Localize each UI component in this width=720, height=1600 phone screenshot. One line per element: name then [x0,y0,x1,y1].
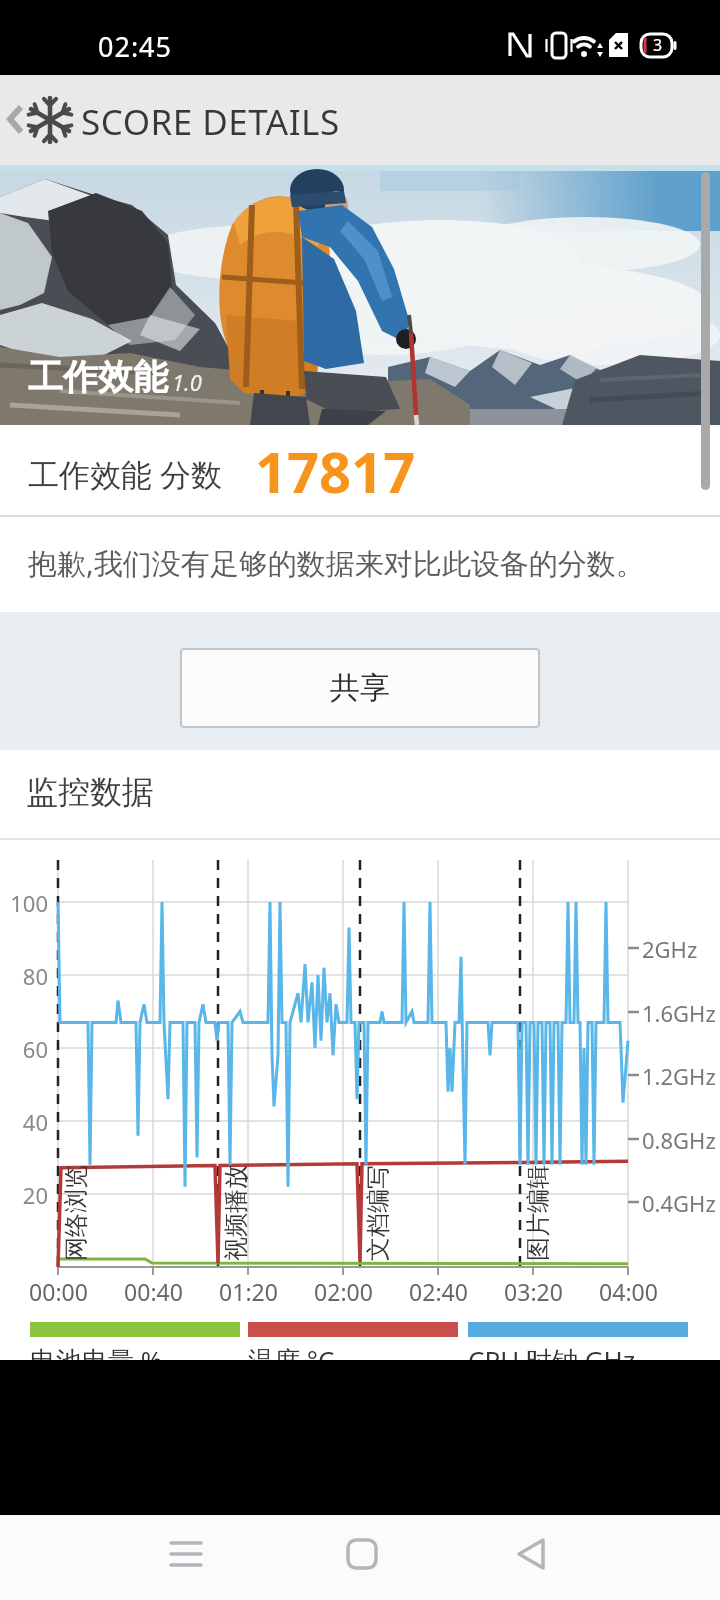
staticText: 04:00 [599,1276,658,1306]
staticText: 2GHz [642,934,698,964]
button[interactable]: 共享 [180,648,540,728]
staticText: 02:45 [98,28,173,65]
staticText: 20 [22,1180,48,1208]
staticText: 工作效能 分数 [28,453,223,495]
staticText: 03:20 [504,1276,563,1306]
staticText: CPU 时钟 GHz [468,1342,636,1378]
staticText: 文档编写 [363,1165,393,1261]
staticText: 02:40 [409,1276,468,1306]
staticText: 1.0 [172,367,202,397]
staticText: 0.8GHz [642,1125,716,1155]
staticText: 1.6GHz [642,998,716,1028]
staticText: 电池电量 % [30,1342,163,1378]
staticText: 监控数据 [26,772,154,812]
staticText: 温度 °C [248,1342,335,1378]
staticText: 0.4GHz [642,1188,716,1218]
staticText: 02:00 [314,1276,373,1306]
staticText: 网络浏览 [61,1165,91,1261]
staticText: 100 [10,888,48,916]
button[interactable] [136,1515,236,1600]
staticText: 00:00 [29,1276,88,1306]
staticText: 01:20 [219,1276,278,1306]
staticText: 17817 [255,433,416,509]
staticText: 1.2GHz [642,1061,716,1091]
button[interactable] [482,1515,582,1600]
staticText: 00:40 [124,1276,183,1306]
staticText: 抱歉,我们没有足够的数据来对比此设备的分数。 [28,543,645,583]
staticText: 图片编辑 [523,1165,553,1261]
staticText: 共享 [330,669,390,707]
staticText: 工作效能 [28,355,168,399]
staticText: 40 [22,1107,48,1135]
staticText: 视频播放 [221,1165,251,1261]
staticText: 80 [22,961,48,989]
staticText: SCORE DETAILS [81,98,340,146]
button[interactable] [312,1515,412,1600]
button[interactable] [0,75,140,165]
staticText: 3 [653,34,663,56]
staticText: 60 [22,1034,48,1062]
